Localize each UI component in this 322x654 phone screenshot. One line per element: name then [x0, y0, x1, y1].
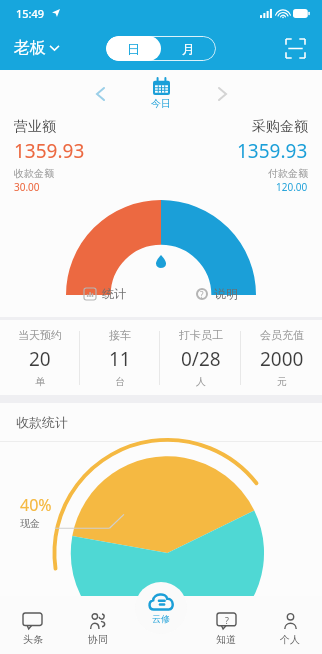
button[interactable]: 当天预约: [0, 320, 80, 395]
button[interactable]: 老板: [12, 35, 61, 61]
staticText: 会员充值: [260, 328, 304, 342]
button[interactable]: 头条: [0, 596, 65, 654]
staticText: 营业额: [14, 118, 56, 136]
staticText: ?: [200, 289, 204, 300]
button[interactable]: ?: [194, 596, 258, 654]
button[interactable]: 会员充值: [241, 320, 322, 395]
staticText: 20: [29, 346, 51, 372]
button[interactable]: Next day: [208, 80, 236, 108]
button[interactable]: 云修: [135, 582, 187, 634]
staticText: 知道: [216, 633, 236, 646]
staticText: 老板: [14, 38, 46, 58]
staticText: 采购金额: [252, 118, 308, 136]
staticText: 0/28: [181, 346, 221, 372]
staticText: 收款统计: [16, 414, 68, 430]
button[interactable]: 统计: [78, 280, 132, 307]
staticText: 收款金额: [14, 167, 54, 180]
staticText: 2000: [260, 346, 304, 372]
staticText: 人: [196, 375, 206, 388]
staticText: 打卡员工: [179, 328, 223, 342]
button[interactable]: 个人: [258, 596, 322, 654]
staticText: 1359.93: [237, 138, 308, 164]
staticText: 120.00: [276, 180, 308, 194]
staticText: 接车: [109, 328, 131, 342]
button[interactable]: 打卡员工: [160, 320, 241, 395]
staticText: 11: [109, 346, 131, 372]
button[interactable]: 日: [106, 36, 161, 61]
button[interactable]: Scan: [280, 33, 310, 63]
staticText: 说明: [214, 286, 238, 301]
staticText: 付款金额: [268, 167, 308, 180]
staticText: 日: [127, 41, 140, 57]
staticText: 协同: [88, 633, 108, 646]
button[interactable]: 协同: [65, 596, 130, 654]
staticText: 30.00: [14, 180, 40, 194]
button[interactable]: Previous day: [86, 80, 114, 108]
staticText: 40%: [20, 494, 52, 516]
staticText: 15:49: [16, 6, 45, 21]
button[interactable]: ?: [190, 280, 244, 307]
button[interactable]: 月: [161, 36, 216, 61]
staticText: 现金: [20, 517, 40, 530]
staticText: 单: [35, 375, 45, 388]
button[interactable]: 接车: [80, 320, 160, 395]
staticText: 头条: [23, 633, 43, 646]
staticText: 当天预约: [18, 328, 62, 342]
staticText: 元: [277, 375, 287, 388]
button[interactable]: 今日: [145, 76, 177, 112]
staticText: 1359.93: [14, 138, 85, 164]
staticText: 个人: [280, 633, 300, 646]
staticText: 统计: [102, 286, 126, 301]
staticText: 今日: [151, 97, 171, 110]
staticText: ?: [225, 614, 229, 626]
staticText: 台: [115, 375, 125, 388]
staticText: 云修: [152, 613, 170, 624]
staticText: 月: [182, 41, 195, 57]
